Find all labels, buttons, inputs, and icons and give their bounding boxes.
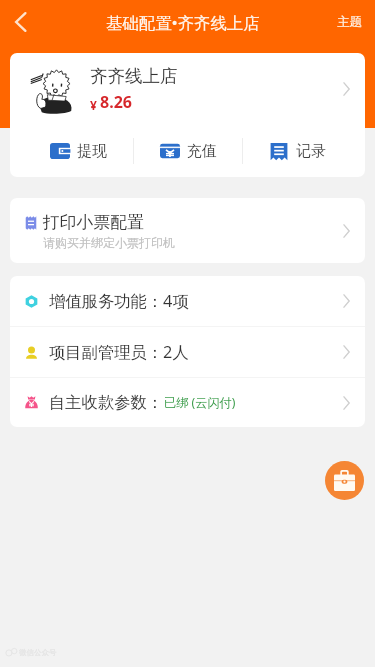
staticText: 齐齐线上店 bbox=[90, 65, 178, 87]
staticText: 已绑 (云闪付) bbox=[164, 394, 236, 411]
staticText: 微信公众号 bbox=[19, 648, 57, 657]
staticText: 增值服务功能：4项 bbox=[49, 290, 189, 312]
button[interactable]: 打印小票配置 bbox=[10, 198, 365, 263]
staticText: ¥ bbox=[90, 97, 100, 113]
button[interactable]: 增值服务功能：4项 bbox=[10, 276, 365, 326]
staticText: 打印小票配置 bbox=[43, 212, 144, 233]
button[interactable]: 提现 bbox=[24, 125, 133, 177]
button[interactable]: Open toolbox bbox=[325, 461, 364, 500]
staticText: 记录 bbox=[296, 142, 326, 161]
staticText: 充值 bbox=[187, 142, 217, 161]
button[interactable]: Back bbox=[4, 5, 38, 39]
button[interactable]: 自主收款参数： bbox=[10, 378, 365, 427]
staticText: 请购买并绑定小票打印机 bbox=[43, 235, 175, 250]
button[interactable]: 齐齐线上店 bbox=[10, 53, 365, 125]
staticText: 自主收款参数： bbox=[49, 392, 164, 413]
button[interactable]: 充值 bbox=[134, 125, 242, 177]
staticText: 8.26 bbox=[100, 91, 132, 113]
staticText: 提现 bbox=[77, 142, 107, 161]
button[interactable]: 主题 bbox=[329, 7, 375, 37]
staticText: 基础配置•齐齐线上店 bbox=[106, 11, 260, 33]
staticText: 项目副管理员：2人 bbox=[49, 341, 189, 363]
button[interactable]: 项目副管理员：2人 bbox=[10, 327, 365, 377]
staticText: 主题 bbox=[337, 14, 362, 30]
button[interactable]: 记录 bbox=[243, 125, 351, 177]
